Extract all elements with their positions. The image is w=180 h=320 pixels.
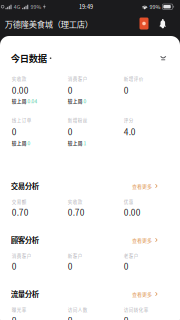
staticText: 线上订单 [12,117,32,123]
staticText: 较上周 [12,98,27,104]
staticText: -0 [26,139,31,146]
staticText: 较上周 [12,140,27,146]
button[interactable]: 查看更多 [130,234,160,245]
staticText: 4.0 [124,125,136,138]
staticText: 0 [12,314,17,320]
staticText: 查看更多 [132,290,152,297]
staticText: 0.70 [12,206,29,218]
staticText: 0.00 [12,84,29,96]
staticText: 交易额 [12,198,27,205]
staticText: 流量分析 [11,289,39,299]
staticText: 99% [30,3,41,10]
staticText: 新增粉丝 [68,117,88,123]
button[interactable]: 通知 [156,14,170,32]
staticText: 0.70 [68,206,85,218]
staticText: 消费客户 [12,252,32,259]
staticText: 查看更多 [132,236,152,243]
staticText: 实收款 [12,75,27,82]
staticText: 99% [149,3,160,10]
button[interactable]: 查看更多 [130,180,160,191]
staticText: 顾客分析 [11,235,39,245]
staticText: 较上周 [68,140,83,146]
staticText: 实收款 [68,198,83,205]
staticText: 0 [124,314,129,320]
staticText: 4G [14,3,21,10]
staticText: 0 [12,125,17,138]
staticText: 今日数据 [11,51,47,65]
staticText: 0 [68,125,73,138]
staticText: -1 [82,139,87,146]
staticText: 0 [68,260,73,272]
button[interactable]: 扫码 [136,14,151,32]
staticText: 19:49 [79,3,93,10]
staticText: 0 [68,84,73,96]
staticText: 新增评价 [124,75,144,82]
staticText: 交易分析 [11,181,39,191]
staticText: 0.00 [124,206,141,218]
staticText: 0 [124,84,129,96]
staticText: 0 [124,260,129,272]
staticText: 优惠 [124,198,134,205]
button[interactable]: 查看更多 [130,288,160,299]
staticText: -0 [82,97,87,104]
button[interactable]: 隐藏数据 [155,51,171,65]
staticText: 评分 [124,117,134,123]
staticText: -0.04 [26,97,38,104]
staticText: 曝光率 [12,306,27,313]
staticText: 0 [68,314,73,320]
staticText: 万德隆美食城（理工店） [5,18,93,30]
staticText: 0 [12,260,17,272]
staticText: 较上周 [68,98,83,104]
staticText: 消费客户 [68,75,88,82]
staticText: 新客户 [68,252,83,259]
staticText: 访问转化率 [124,306,149,313]
staticText: 老客户 [124,252,139,259]
staticText: 访问人数 [68,306,88,313]
staticText: 查看更多 [132,182,152,189]
